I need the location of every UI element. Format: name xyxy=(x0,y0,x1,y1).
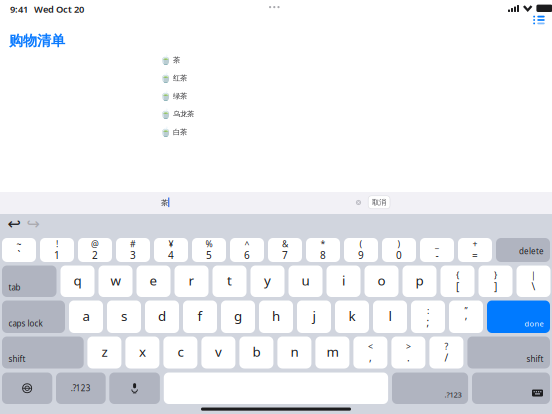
button[interactable]: > xyxy=(391,336,425,368)
button[interactable]: n xyxy=(277,336,311,368)
button[interactable]: c xyxy=(163,336,197,368)
staticText: . xyxy=(407,351,410,364)
button[interactable]: caps lock xyxy=(2,300,65,333)
button[interactable]: 🍵 xyxy=(159,126,187,137)
staticText: 🍵 xyxy=(159,54,171,65)
button[interactable]: & xyxy=(268,238,302,262)
button[interactable]: List view options xyxy=(529,12,549,28)
staticText: % xyxy=(205,238,212,250)
button[interactable]: } xyxy=(478,265,512,297)
button[interactable]: z xyxy=(87,336,121,368)
button[interactable]: shift xyxy=(467,336,550,368)
staticText: caps lock xyxy=(9,318,43,329)
staticText: ? xyxy=(444,340,448,352)
button[interactable]: tab xyxy=(2,265,56,297)
staticText: Wed Oct 20 xyxy=(34,3,84,15)
button[interactable]: shift xyxy=(2,336,84,368)
button[interactable]: ? xyxy=(429,336,463,368)
staticText: ↩ xyxy=(7,215,20,233)
staticText: 9 xyxy=(358,248,364,262)
button[interactable]: ! xyxy=(40,238,74,262)
button[interactable]: p xyxy=(402,265,436,297)
button[interactable]: 🍵 xyxy=(159,90,187,101)
button[interactable]: y xyxy=(250,265,284,297)
button[interactable]: w xyxy=(98,265,132,297)
button[interactable]: b xyxy=(239,336,273,368)
button[interactable]: Space xyxy=(164,372,388,404)
staticText: ) xyxy=(397,238,400,250)
button[interactable]: 🍵 xyxy=(159,72,187,83)
button[interactable]: # xyxy=(116,238,150,262)
staticText: .?123 xyxy=(71,383,91,394)
button[interactable]: a xyxy=(69,300,103,333)
button[interactable]: | xyxy=(516,265,550,297)
button[interactable]: ” xyxy=(449,300,483,333)
button[interactable]: delete xyxy=(496,238,550,262)
button[interactable]: Clear text xyxy=(353,197,364,208)
button[interactable]: + xyxy=(458,238,492,262)
button[interactable]: v xyxy=(201,336,235,368)
button[interactable]: .?123 xyxy=(392,372,468,404)
button[interactable]: ¥ xyxy=(154,238,188,262)
staticText: 🍵 xyxy=(159,126,171,137)
button[interactable]: ( xyxy=(344,238,378,262)
button[interactable]: t xyxy=(212,265,246,297)
staticText: 绿茶 xyxy=(173,91,187,100)
staticText: o xyxy=(377,271,385,289)
button[interactable]: ^ xyxy=(230,238,264,262)
button[interactable]: ) xyxy=(382,238,416,262)
button[interactable]: f xyxy=(183,300,217,333)
staticText: ” xyxy=(464,305,467,317)
button[interactable]: Hide keyboard xyxy=(472,372,550,404)
button[interactable]: e xyxy=(136,265,170,297)
button[interactable]: Undo xyxy=(7,217,21,231)
staticText: , xyxy=(369,351,372,364)
button[interactable]: { xyxy=(440,265,474,297)
button[interactable]: x xyxy=(125,336,159,368)
button[interactable]: r xyxy=(174,265,208,297)
button[interactable]: @ xyxy=(78,238,112,262)
staticText: < xyxy=(368,340,373,352)
button[interactable]: < xyxy=(353,336,387,368)
button[interactable]: g xyxy=(221,300,255,333)
button[interactable]: m xyxy=(315,336,349,368)
staticText: ` xyxy=(17,248,20,262)
staticText: / xyxy=(444,351,448,364)
button[interactable]: done xyxy=(487,300,550,333)
staticText: [ xyxy=(456,280,459,293)
button[interactable]: _ xyxy=(420,238,454,262)
button[interactable]: o xyxy=(364,265,398,297)
staticText: i xyxy=(342,271,345,289)
button[interactable]: .?123 xyxy=(56,372,106,404)
button[interactable]: d xyxy=(145,300,179,333)
staticText: c xyxy=(177,342,183,361)
button[interactable]: Next keyboard xyxy=(2,372,52,404)
button[interactable]: s xyxy=(107,300,141,333)
button[interactable]: h xyxy=(259,300,293,333)
button[interactable]: k xyxy=(335,300,369,333)
staticText: # xyxy=(130,238,136,250)
staticText: } xyxy=(494,269,497,281)
staticText: v xyxy=(215,342,222,361)
button[interactable]: Dictation xyxy=(109,372,160,404)
staticText: done xyxy=(524,319,543,329)
staticText: 🍵 xyxy=(159,72,171,83)
button[interactable]: q xyxy=(60,265,94,297)
button[interactable]: 🍵 xyxy=(159,108,194,119)
button[interactable]: l xyxy=(373,300,407,333)
button[interactable]: : xyxy=(411,300,445,333)
staticText: l xyxy=(388,307,391,325)
staticText: = xyxy=(472,248,478,262)
button[interactable]: 取消 xyxy=(368,196,390,209)
staticText: 9:41 xyxy=(10,3,28,15)
button[interactable]: u xyxy=(288,265,322,297)
staticText: 乌龙茶 xyxy=(173,109,194,118)
button[interactable]: 🍵 xyxy=(159,54,180,65)
button[interactable]: % xyxy=(192,238,226,262)
button[interactable]: i xyxy=(326,265,360,297)
button[interactable]: * xyxy=(306,238,340,262)
button[interactable]: Redo xyxy=(26,217,40,231)
button[interactable]: j xyxy=(297,300,331,333)
button[interactable]: ~ xyxy=(2,238,36,262)
staticText: ^ xyxy=(244,238,249,250)
